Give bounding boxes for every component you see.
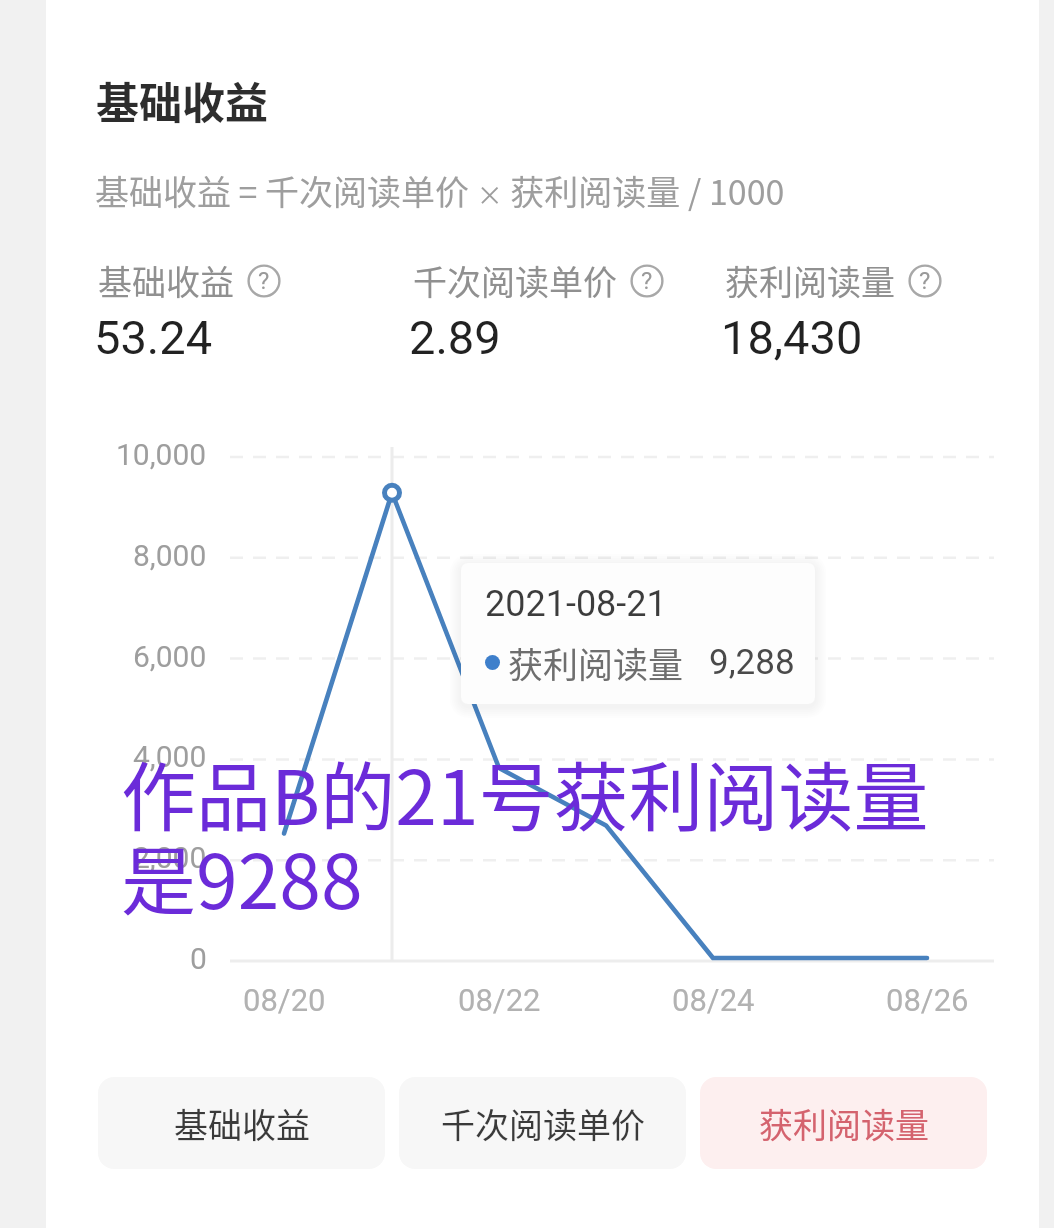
staticText: 基础收益 bbox=[174, 1099, 310, 1148]
button[interactable]: 千次阅读单价 bbox=[399, 1077, 686, 1169]
staticText: 基础收益 = 千次阅读单价 × 获利阅读量 / 1000 bbox=[95, 166, 785, 215]
staticText: ? bbox=[919, 267, 931, 295]
staticText: 08/26 bbox=[886, 982, 969, 1018]
staticText: 获利阅读量 bbox=[725, 256, 895, 305]
staticText: 基础收益 bbox=[98, 256, 234, 305]
staticText: 08/22 bbox=[458, 982, 541, 1018]
staticText: 08/24 bbox=[672, 982, 755, 1018]
button[interactable]: 获利阅读量 bbox=[700, 1077, 987, 1169]
staticText: 9,288 bbox=[709, 642, 795, 683]
staticText: ? bbox=[641, 267, 653, 295]
staticText: 4,000 bbox=[133, 739, 207, 774]
staticText: 10,000 bbox=[116, 437, 207, 472]
staticText: 8,000 bbox=[133, 538, 207, 573]
button[interactable]: 帮助 bbox=[630, 264, 664, 298]
staticText: 获利阅读量 bbox=[508, 637, 684, 688]
staticText: 0 bbox=[190, 941, 207, 976]
button[interactable]: 帮助 bbox=[908, 264, 942, 298]
button[interactable]: 基础收益 bbox=[98, 1077, 385, 1169]
staticText: 千次阅读单价 bbox=[441, 1099, 645, 1148]
staticText: 作品B的21号获利阅读量 是9288 bbox=[121, 738, 929, 931]
staticText: 53.24 bbox=[94, 310, 213, 365]
staticText: 18,430 bbox=[721, 310, 863, 365]
staticText: 2.89 bbox=[409, 310, 501, 365]
staticText: 08/20 bbox=[243, 982, 326, 1018]
staticText: 6,000 bbox=[133, 639, 207, 674]
staticText: 千次阅读单价 bbox=[413, 256, 617, 305]
staticText: 获利阅读量 bbox=[759, 1099, 929, 1148]
button[interactable]: 收益趋势图 bbox=[60, 430, 1000, 1020]
staticText: 2,000 bbox=[133, 840, 207, 875]
staticText: 基础收益 bbox=[96, 69, 268, 131]
staticText: ? bbox=[258, 267, 270, 295]
staticText: 2021-08-21 bbox=[485, 583, 667, 625]
button[interactable]: 帮助 bbox=[247, 264, 281, 298]
